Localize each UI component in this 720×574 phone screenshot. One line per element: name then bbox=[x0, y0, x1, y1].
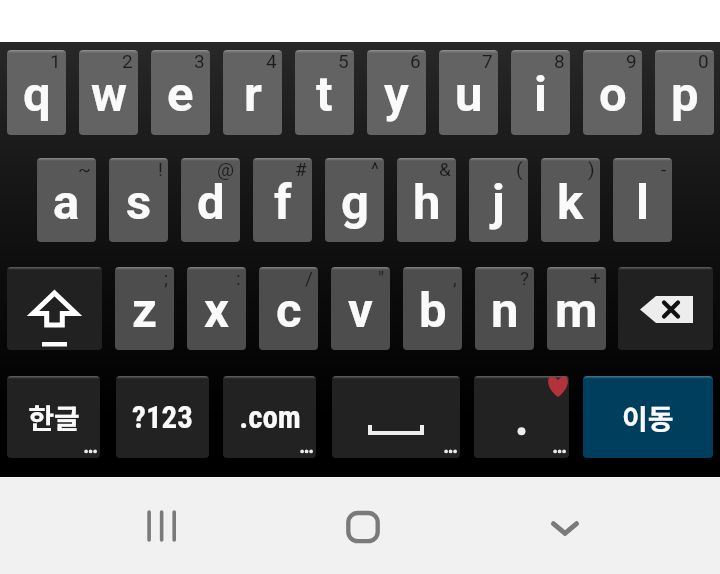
staticText: u bbox=[455, 66, 483, 123]
staticText: : bbox=[236, 267, 241, 289]
button[interactable]: ( bbox=[469, 158, 528, 242]
button[interactable]: Period bbox=[474, 376, 569, 458]
button[interactable]: Space bbox=[332, 376, 460, 458]
staticText: o bbox=[599, 66, 627, 123]
staticText: c bbox=[276, 282, 302, 339]
button[interactable]: 3 bbox=[151, 50, 210, 135]
staticText: b bbox=[419, 282, 447, 339]
staticText: / bbox=[305, 267, 313, 289]
staticText: k bbox=[557, 174, 584, 231]
staticText: l bbox=[636, 174, 649, 231]
button[interactable]: / bbox=[259, 267, 318, 350]
button[interactable]: 2 bbox=[79, 50, 138, 135]
button[interactable]: 1 bbox=[7, 50, 66, 135]
staticText: h bbox=[413, 174, 441, 231]
staticText: 8 bbox=[554, 50, 565, 72]
button[interactable]: & bbox=[397, 158, 456, 242]
button[interactable]: ? bbox=[475, 267, 534, 350]
staticText: ( bbox=[516, 158, 523, 180]
button[interactable]: + bbox=[547, 267, 606, 350]
button[interactable]: @ bbox=[181, 158, 240, 242]
button[interactable]: Back bbox=[529, 502, 601, 550]
button[interactable]: 이동 bbox=[583, 376, 713, 458]
button[interactable]: 8 bbox=[511, 50, 570, 135]
staticText: ; bbox=[164, 267, 169, 289]
staticText: m bbox=[555, 282, 598, 339]
button[interactable]: 7 bbox=[439, 50, 498, 135]
staticText: ~ bbox=[78, 158, 91, 180]
staticText: j bbox=[492, 174, 505, 231]
staticText: & bbox=[439, 158, 451, 180]
staticText: .com bbox=[239, 399, 301, 435]
button[interactable]: Home bbox=[327, 502, 399, 550]
button[interactable]: 한글 bbox=[7, 376, 100, 458]
staticText: ?123 bbox=[132, 399, 193, 435]
button[interactable]: Recents bbox=[126, 502, 198, 550]
staticText: z bbox=[132, 282, 157, 339]
button[interactable]: ) bbox=[541, 158, 600, 242]
staticText: d bbox=[197, 174, 225, 231]
staticText: f bbox=[274, 174, 292, 231]
button[interactable]: ~ bbox=[37, 158, 96, 242]
staticText: 6 bbox=[410, 50, 421, 72]
staticText: , bbox=[453, 267, 457, 289]
staticText: + bbox=[590, 267, 601, 289]
staticText: @ bbox=[217, 158, 235, 180]
staticText: " bbox=[378, 267, 385, 289]
button[interactable]: 6 bbox=[367, 50, 426, 135]
staticText: y bbox=[384, 66, 409, 123]
staticText: 7 bbox=[482, 50, 493, 72]
button[interactable]: ! bbox=[109, 158, 168, 242]
staticText: ? bbox=[520, 267, 529, 289]
staticText: q bbox=[23, 66, 51, 123]
staticText: i bbox=[534, 66, 547, 123]
staticText: 이동 bbox=[622, 397, 674, 438]
staticText: e bbox=[167, 66, 194, 123]
staticText: n bbox=[491, 282, 519, 339]
button[interactable]: ; bbox=[115, 267, 174, 350]
staticText: v bbox=[348, 282, 373, 339]
staticText: ! bbox=[158, 158, 163, 180]
staticText: g bbox=[341, 174, 369, 231]
button[interactable]: - bbox=[613, 158, 672, 242]
button[interactable]: Shift bbox=[7, 267, 102, 350]
staticText: ) bbox=[588, 158, 595, 180]
staticText: 9 bbox=[626, 50, 637, 72]
button[interactable]: # bbox=[253, 158, 312, 242]
staticText: r bbox=[244, 66, 262, 123]
staticText: t bbox=[316, 66, 333, 123]
staticText: a bbox=[53, 174, 80, 231]
staticText: # bbox=[295, 158, 307, 180]
staticText: x bbox=[204, 282, 229, 339]
button[interactable]: " bbox=[331, 267, 390, 350]
button[interactable]: 5 bbox=[295, 50, 354, 135]
button[interactable]: , bbox=[403, 267, 462, 350]
staticText: 0 bbox=[698, 50, 709, 72]
staticText: 2 bbox=[122, 50, 133, 72]
button[interactable]: Backspace bbox=[618, 267, 713, 350]
button[interactable]: .com bbox=[223, 376, 316, 458]
button[interactable]: ^ bbox=[325, 158, 384, 242]
staticText: 1 bbox=[50, 50, 61, 72]
staticText: w bbox=[91, 66, 127, 123]
staticText: s bbox=[126, 174, 152, 231]
staticText: - bbox=[661, 158, 667, 180]
button[interactable]: 4 bbox=[223, 50, 282, 135]
button[interactable]: 9 bbox=[583, 50, 642, 135]
staticText: 3 bbox=[194, 50, 205, 72]
staticText: 4 bbox=[266, 50, 277, 72]
button[interactable]: : bbox=[187, 267, 246, 350]
button[interactable]: ?123 bbox=[116, 376, 209, 458]
staticText: 5 bbox=[338, 50, 349, 72]
staticText: p bbox=[671, 66, 699, 123]
staticText: 한글 bbox=[28, 397, 80, 438]
staticText: ^ bbox=[371, 158, 379, 180]
button[interactable]: 0 bbox=[655, 50, 714, 135]
